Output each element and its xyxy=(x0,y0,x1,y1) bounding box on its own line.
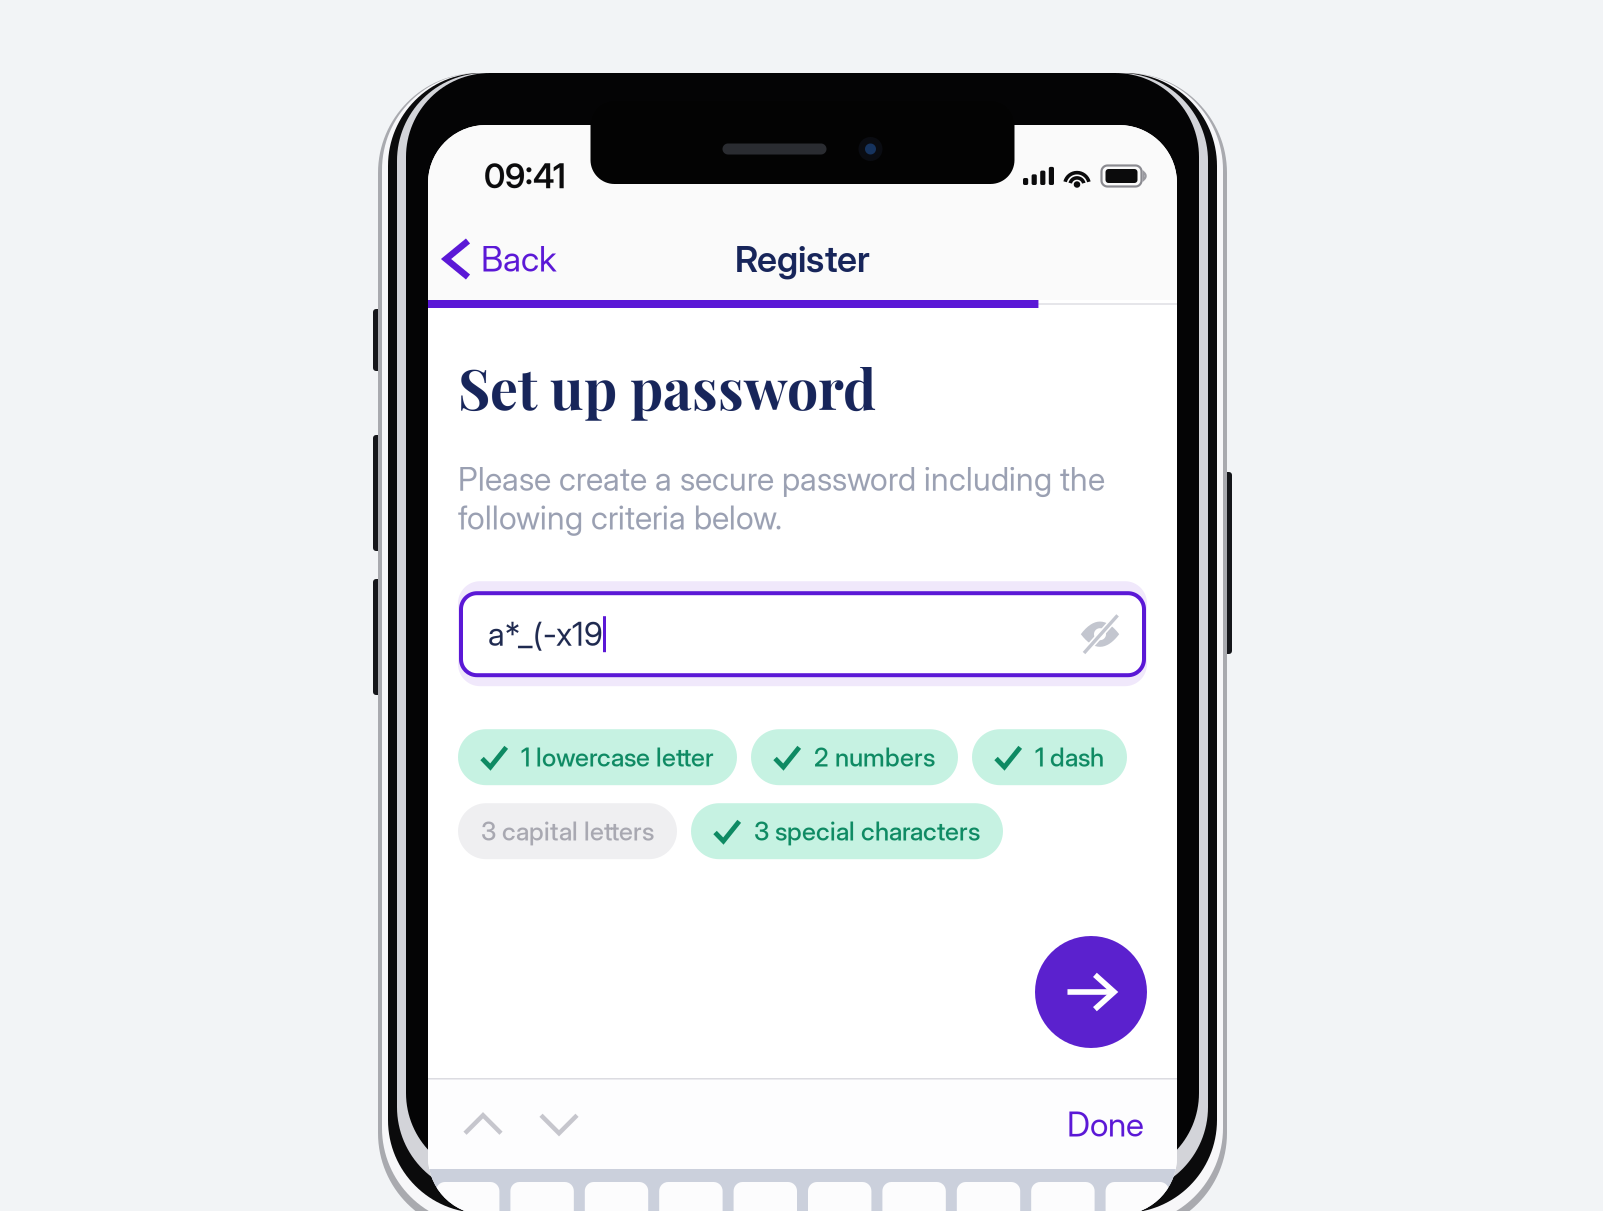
button[interactable]: 1 lowercase letter xyxy=(458,729,737,785)
button[interactable]: Back xyxy=(428,224,575,294)
staticText: 3 special characters xyxy=(754,816,980,847)
button[interactable]: 3 special characters xyxy=(691,803,1003,859)
staticText: Back xyxy=(481,238,557,280)
button[interactable]: Next field xyxy=(529,1097,589,1151)
staticText: Please create a secure password includin… xyxy=(458,460,1105,537)
staticText: 09:41 xyxy=(484,156,566,196)
staticText: 1 lowercase letter xyxy=(521,742,714,773)
button[interactable]: Done xyxy=(1055,1104,1144,1144)
staticText: a*_(-x19 xyxy=(488,615,603,653)
staticText: 3 capital letters xyxy=(481,816,654,847)
button[interactable]: 2 numbers xyxy=(751,729,958,785)
staticText: Set up password xyxy=(458,351,876,425)
staticText: Done xyxy=(1067,1104,1144,1144)
staticText: Register xyxy=(735,237,870,281)
button[interactable]: Previous field xyxy=(453,1097,513,1151)
staticText: 1 dash xyxy=(1035,742,1104,773)
staticText: 2 numbers xyxy=(814,742,935,773)
button[interactable]: 1 dash xyxy=(972,729,1127,785)
button[interactable]: Continue xyxy=(1035,936,1147,1048)
button[interactable]: 3 capital letters xyxy=(458,803,677,859)
